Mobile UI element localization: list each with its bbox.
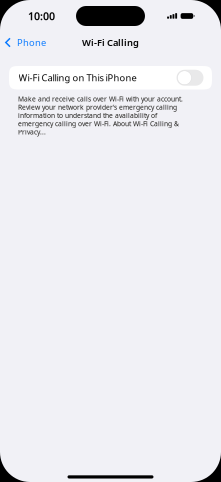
button[interactable]: Wi-Fi Calling on This iPhone	[9, 66, 212, 89]
button[interactable]: Phone	[0, 31, 52, 54]
staticText: 10:00	[28, 9, 55, 23]
staticText: Make and receive calls over Wi-Fi with y…	[18, 94, 183, 136]
staticText: Wi-Fi Calling on This iPhone	[18, 72, 136, 84]
staticText: Wi-Fi Calling	[82, 36, 139, 49]
staticText: Phone	[17, 36, 46, 49]
button[interactable]: Make and receive calls over Wi-Fi with y…	[0, 89, 221, 136]
